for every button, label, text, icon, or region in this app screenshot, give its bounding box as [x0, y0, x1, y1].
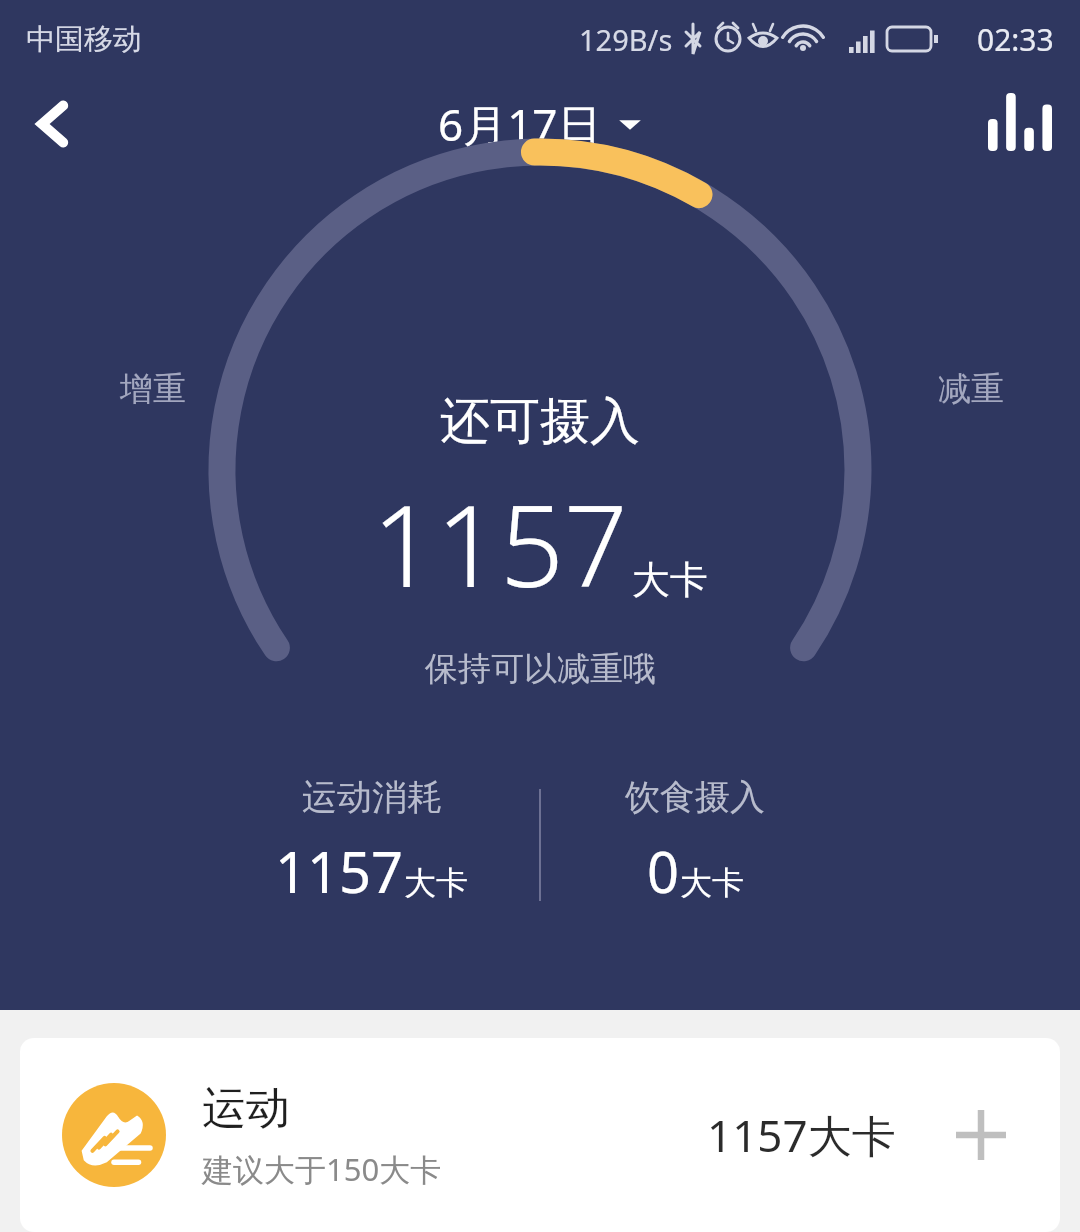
- button[interactable]: 饮食摄入: [625, 775, 765, 909]
- button[interactable]: 6月17日: [424, 86, 656, 162]
- staticText: 运动: [202, 1081, 290, 1136]
- staticText: 1157大卡: [707, 1105, 896, 1165]
- staticText: 中国移动: [26, 21, 142, 58]
- staticText: 129B/s: [579, 20, 673, 59]
- staticText: 饮食摄入: [625, 775, 765, 819]
- button[interactable]: Statistics: [972, 74, 1068, 170]
- staticText: 建议大于150大卡: [202, 1148, 442, 1190]
- staticText: 1157: [275, 833, 404, 909]
- staticText: 运动消耗: [302, 775, 442, 819]
- button[interactable]: 运动消耗: [275, 775, 468, 909]
- staticText: 大卡: [680, 863, 744, 903]
- staticText: 1157: [372, 467, 628, 620]
- staticText: 保持可以减重哦: [425, 648, 656, 690]
- staticText: 02:33: [977, 19, 1054, 60]
- staticText: 0: [647, 833, 680, 909]
- staticText: 6月17日: [438, 94, 602, 154]
- button[interactable]: 运动: [20, 1038, 1060, 1232]
- staticText: 减重: [938, 368, 1004, 410]
- staticText: 大卡: [632, 556, 708, 604]
- button[interactable]: Back: [6, 76, 102, 172]
- staticText: 还可摄入: [440, 390, 640, 453]
- staticText: 大卡: [404, 863, 468, 903]
- staticText: 增重: [120, 368, 186, 410]
- button[interactable]: Add exercise: [944, 1098, 1018, 1172]
